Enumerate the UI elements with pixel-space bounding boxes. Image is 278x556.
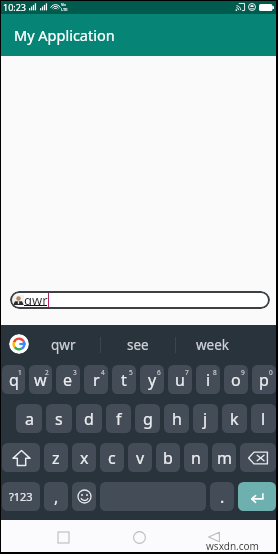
button[interactable]: Emoji — [72, 482, 96, 511]
staticText: 0 — [269, 368, 273, 377]
button[interactable]: e — [56, 365, 80, 394]
button[interactable]: d — [76, 404, 102, 433]
staticText: x — [80, 447, 89, 469]
staticText: d — [84, 408, 94, 430]
staticText: u — [175, 369, 185, 391]
button[interactable]: . — [210, 482, 234, 511]
button[interactable]: b — [156, 443, 180, 472]
button[interactable]: z — [44, 443, 68, 472]
staticText: 5 — [129, 368, 133, 377]
button[interactable]: l — [251, 404, 276, 433]
button[interactable]: n — [184, 443, 208, 472]
button[interactable]: c — [100, 443, 124, 472]
button[interactable]: My Application — [0, 14, 278, 56]
staticText: a — [25, 408, 34, 430]
staticText: m — [217, 447, 232, 469]
staticText: 10:23 — [3, 1, 27, 13]
button[interactable]: a — [16, 404, 42, 433]
button[interactable]: j — [193, 404, 218, 433]
button[interactable]: Backspace — [240, 443, 276, 472]
button[interactable]: Recents — [47, 521, 79, 553]
staticText: g — [143, 408, 153, 430]
staticText: q — [9, 369, 19, 391]
button[interactable]: u — [168, 365, 192, 394]
button[interactable]: Shift — [2, 443, 40, 472]
button[interactable]: h — [164, 404, 189, 433]
button[interactable]: i — [196, 365, 220, 394]
staticText: qwr — [24, 291, 48, 305]
button[interactable]: t — [112, 365, 136, 394]
staticText: l — [261, 408, 266, 430]
button[interactable]: s — [46, 404, 72, 433]
staticText: f — [116, 408, 122, 430]
staticText: e — [63, 369, 73, 391]
staticText: 6 — [157, 368, 161, 377]
button[interactable]: p — [252, 365, 276, 394]
staticText: 1 — [18, 368, 22, 377]
staticText: My Application — [14, 25, 115, 45]
button[interactable]: m — [212, 443, 236, 472]
button[interactable]: o — [224, 365, 248, 394]
staticText: ?123 — [9, 489, 33, 504]
button[interactable]: week — [176, 329, 250, 360]
staticText: z — [52, 447, 60, 469]
staticText: s — [55, 408, 63, 430]
button[interactable]: x — [72, 443, 96, 472]
button[interactable]: , — [44, 482, 68, 511]
button[interactable]: Back — [198, 521, 230, 553]
staticText: , — [54, 486, 59, 508]
button[interactable]: qwr — [26, 329, 100, 360]
staticText: 3 — [73, 368, 77, 377]
staticText: . — [220, 486, 225, 508]
staticText: r — [93, 369, 100, 391]
button[interactable]: ?123 — [2, 482, 40, 511]
staticText: o — [231, 369, 241, 391]
staticText: Vo LTE — [61, 2, 68, 12]
button[interactable]: qwr — [10, 291, 270, 309]
button[interactable]: w — [29, 365, 52, 394]
staticText: y — [148, 369, 157, 391]
staticText: 9 — [241, 368, 245, 377]
staticText: c — [108, 447, 116, 469]
staticText: 2 — [45, 368, 49, 377]
staticText: n — [191, 447, 201, 469]
button[interactable]: k — [222, 404, 247, 433]
staticText: j — [203, 408, 208, 430]
staticText: 7 — [185, 368, 189, 377]
staticText: b — [163, 447, 173, 469]
staticText: 4 — [101, 368, 105, 377]
button[interactable]: see — [101, 329, 175, 360]
staticText: p — [259, 369, 269, 391]
staticText: i — [206, 369, 211, 391]
staticText: w — [34, 369, 47, 391]
staticText: week — [196, 336, 230, 354]
staticText: h — [172, 408, 182, 430]
staticText: v — [136, 447, 145, 469]
staticText: qwr — [51, 336, 76, 354]
button[interactable]: r — [84, 365, 108, 394]
button[interactable]: Enter — [238, 482, 276, 511]
button[interactable]: Google — [9, 334, 29, 354]
button[interactable]: v — [128, 443, 152, 472]
button[interactable]: q — [2, 365, 25, 394]
staticText: wsxdn.com — [206, 539, 259, 553]
button[interactable]: g — [135, 404, 160, 433]
button[interactable]: f — [106, 404, 131, 433]
staticText: 8 — [213, 368, 217, 377]
staticText: see — [127, 336, 149, 354]
staticText: k — [230, 408, 239, 430]
button[interactable]: Home — [123, 521, 155, 553]
staticText: t — [121, 369, 127, 391]
button[interactable]: y — [140, 365, 164, 394]
